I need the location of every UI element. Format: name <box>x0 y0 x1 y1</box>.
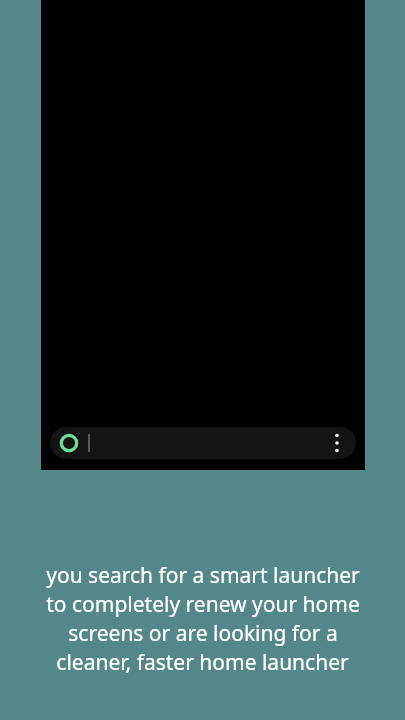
button[interactable]: More options <box>326 432 348 454</box>
staticText: screens or are looking for a <box>68 619 338 648</box>
staticText: to completely renew your home <box>46 590 360 619</box>
staticText: cleaner, faster home launcher <box>56 648 349 677</box>
other: Voice search <box>59 433 79 453</box>
button[interactable]: Voice search <box>50 427 356 459</box>
staticText: you search for a smart launcher <box>46 561 360 590</box>
